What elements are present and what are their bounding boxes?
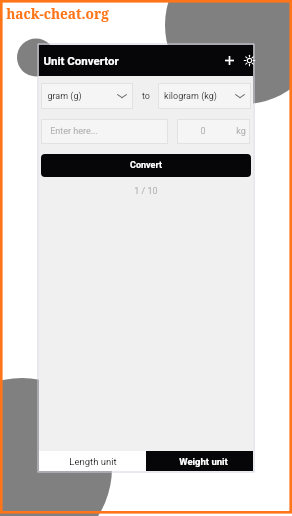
button[interactable]: kilogram (kg) [158,83,251,109]
staticText: Convert [130,160,162,171]
staticText: Length unit [69,456,117,467]
button[interactable]: Toggle brightness [239,50,259,70]
staticText: to [142,91,150,102]
staticText: kilogram (kg) [164,91,217,102]
staticText: 1 / 10 [134,186,158,197]
button[interactable]: Add unit [219,50,239,70]
button[interactable]: Weight unit [146,451,253,471]
button[interactable]: gram (g) [41,83,133,109]
button[interactable]: Convert [41,154,251,177]
button[interactable]: Enter here... [41,119,168,144]
button[interactable]: Length unit [39,451,146,471]
staticText: 0 [200,126,206,137]
staticText: Enter here... [50,126,98,137]
staticText: hack-cheat.org [6,4,109,23]
button[interactable]: Unit Convertor [39,45,253,76]
staticText: gram (g) [47,91,82,102]
button[interactable]: 0 [177,119,250,144]
staticText: kg [236,126,246,137]
staticText: Unit Convertor [43,54,119,67]
staticText: Weight unit [179,456,228,467]
